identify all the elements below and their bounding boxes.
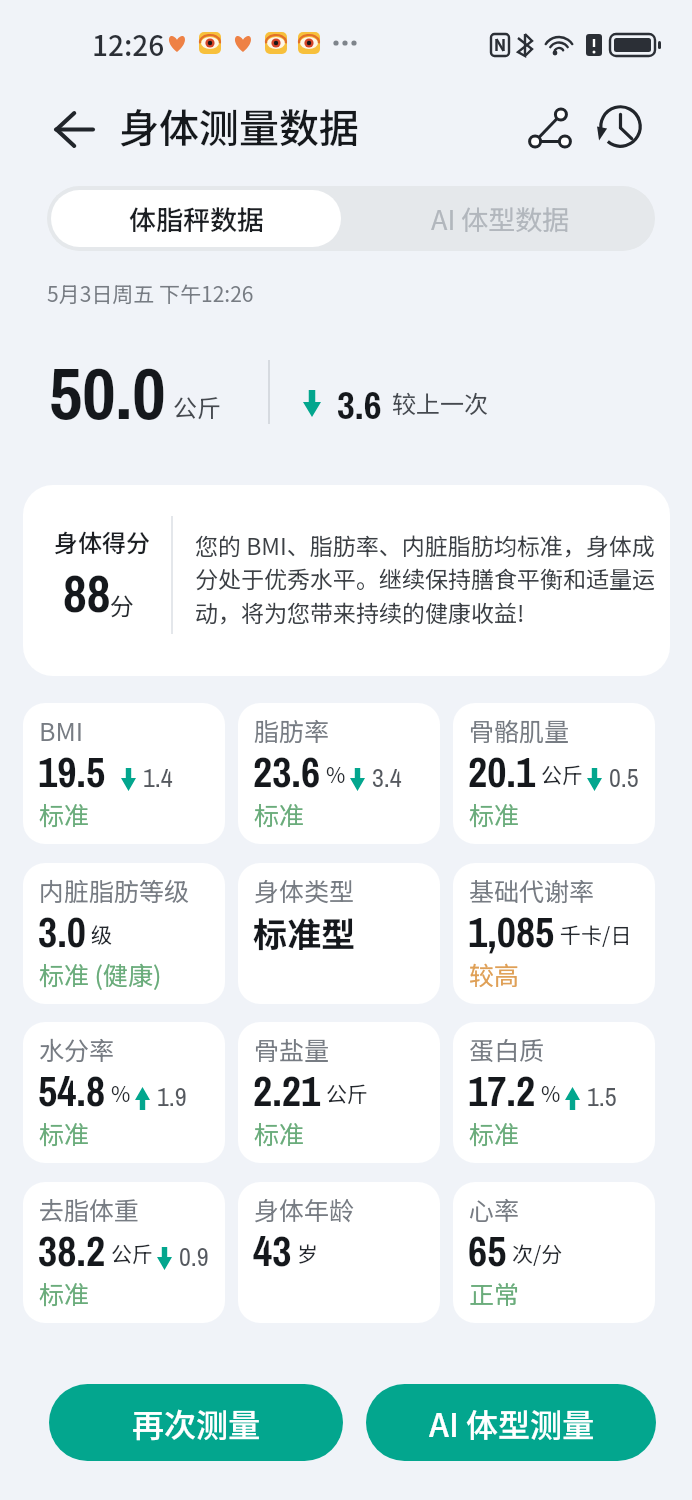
staticText: 3.6	[337, 379, 382, 432]
staticText: 3.4	[372, 760, 402, 795]
staticText: 分	[110, 587, 134, 622]
button[interactable]: Share	[518, 96, 582, 160]
staticText: 标准	[469, 1115, 520, 1151]
staticText: 再次测量	[132, 1400, 261, 1446]
button[interactable]: AI 体型测量	[366, 1384, 656, 1461]
staticText: 0.9	[179, 1239, 209, 1274]
staticText: 88	[63, 558, 111, 628]
button[interactable]: 身体年龄	[238, 1182, 440, 1323]
button[interactable]: 脂肪率	[238, 703, 440, 844]
button[interactable]: 去脂体重	[23, 1182, 225, 1323]
staticText: 骨盐量	[254, 1031, 330, 1067]
staticText: 3.0	[38, 904, 86, 961]
staticText: 标准 (健康)	[39, 956, 162, 992]
staticText: 标准	[254, 796, 305, 832]
staticText: AI 体型测量	[429, 1400, 594, 1446]
staticText: 较高	[469, 956, 520, 992]
staticText: BMI	[39, 712, 84, 748]
staticText: 公斤	[541, 759, 583, 789]
staticText: 千卡/日	[560, 919, 632, 949]
staticText: 标准	[469, 796, 520, 832]
button[interactable]: 身体类型	[238, 863, 440, 1004]
button[interactable]: AI 体型数据	[345, 186, 655, 251]
staticText: 43	[253, 1223, 292, 1280]
staticText: 1.4	[143, 760, 173, 795]
staticText: 级	[91, 919, 112, 949]
button[interactable]: 体脂秤数据	[51, 190, 341, 247]
staticText: %	[541, 1078, 561, 1108]
button[interactable]: Back	[40, 97, 106, 161]
staticText: 标准	[39, 1115, 90, 1151]
staticText: 1.5	[587, 1079, 617, 1114]
staticText: 12:26	[92, 24, 165, 65]
staticText: 标准型	[253, 908, 355, 957]
staticText: 1,085	[468, 904, 555, 961]
staticText: 蛋白质	[469, 1031, 545, 1067]
staticText: 去脂体重	[39, 1191, 140, 1227]
staticText: 公斤	[173, 389, 221, 424]
staticText: 基础代谢率	[469, 872, 595, 908]
staticText: 身体测量数据	[119, 97, 359, 155]
staticText: 内脏脂肪等级	[39, 872, 190, 908]
staticText: 标准	[39, 1275, 90, 1311]
staticText: 50.0	[49, 343, 166, 441]
staticText: 公斤	[111, 1238, 153, 1268]
staticText: 1.9	[157, 1079, 187, 1114]
staticText: 较上一次	[392, 385, 488, 420]
staticText: 您的 BMI、脂肪率、内脏脂肪均标准，身体成分处于优秀水平。继续保持膳食平衡和适…	[195, 528, 660, 629]
staticText: 身体得分	[54, 524, 150, 559]
staticText: 水分率	[39, 1031, 115, 1067]
staticText: 20.1	[468, 744, 536, 801]
button[interactable]: 水分率	[23, 1022, 225, 1163]
button[interactable]: 内脏脂肪等级	[23, 863, 225, 1004]
staticText: 54.8	[38, 1063, 106, 1120]
button[interactable]: 再次测量	[49, 1384, 343, 1461]
staticText: 身体类型	[254, 872, 355, 908]
button[interactable]: 蛋白质	[453, 1022, 655, 1163]
button[interactable]: 身体得分	[23, 485, 670, 676]
staticText: 脂肪率	[254, 712, 330, 748]
staticText: 身体年龄	[254, 1191, 355, 1227]
staticText: 23.6	[253, 744, 321, 801]
staticText: %	[326, 759, 346, 789]
staticText: 2.21	[253, 1063, 321, 1120]
staticText: 岁	[297, 1238, 318, 1268]
staticText: 65	[468, 1223, 507, 1280]
staticText: 19.5	[38, 744, 106, 801]
staticText: 心率	[469, 1191, 520, 1227]
staticText: 5月3日周五 下午12:26	[47, 278, 254, 308]
staticText: 体脂秤数据	[129, 199, 264, 238]
button[interactable]: 骨骼肌量	[453, 703, 655, 844]
staticText: %	[111, 1078, 131, 1108]
button[interactable]: 心率	[453, 1182, 655, 1323]
staticText: 骨骼肌量	[469, 712, 570, 748]
staticText: 标准	[254, 1115, 305, 1151]
button[interactable]: History	[588, 94, 652, 158]
staticText: 标准	[39, 796, 90, 832]
button[interactable]: 基础代谢率	[453, 863, 655, 1004]
button[interactable]: BMI	[23, 703, 225, 844]
staticText: 38.2	[38, 1223, 106, 1280]
staticText: 正常	[469, 1275, 520, 1311]
button[interactable]: 骨盐量	[238, 1022, 440, 1163]
staticText: AI 体型数据	[431, 199, 570, 238]
staticText: 17.2	[468, 1063, 536, 1120]
staticText: 0.5	[609, 760, 639, 795]
staticText: 公斤	[326, 1078, 368, 1108]
staticText: 次/分	[512, 1238, 563, 1268]
